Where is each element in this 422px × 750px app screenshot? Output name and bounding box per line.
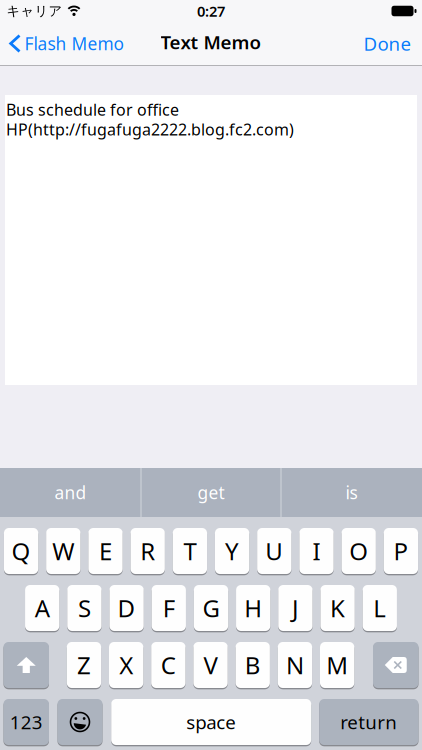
button[interactable]: Z <box>67 642 101 688</box>
staticText: return <box>340 710 397 734</box>
staticText: G <box>202 592 219 624</box>
staticText: K <box>330 592 345 624</box>
staticText: D <box>118 592 136 624</box>
button[interactable]: C <box>151 642 185 688</box>
staticText: Q <box>12 535 31 567</box>
staticText: E <box>99 535 112 567</box>
button[interactable]: H <box>236 585 270 631</box>
button[interactable]: G <box>194 585 228 631</box>
button[interactable]: F <box>152 585 186 631</box>
staticText: space <box>186 710 236 734</box>
button[interactable]: 123 <box>3 699 49 745</box>
staticText: Done <box>363 31 411 56</box>
staticText: X <box>119 649 133 681</box>
button[interactable]: I <box>299 528 334 574</box>
staticText: A <box>35 592 50 624</box>
staticText: 123 <box>10 710 43 734</box>
button[interactable]: B <box>236 642 270 688</box>
staticText: U <box>265 535 283 567</box>
button[interactable] <box>373 642 418 688</box>
staticText: J <box>292 592 299 624</box>
button[interactable]: and <box>0 468 140 517</box>
staticText: Z <box>77 649 91 681</box>
button[interactable]: A <box>25 585 59 631</box>
staticText: F <box>163 592 175 624</box>
button[interactable]: E <box>88 528 123 574</box>
staticText: 0:27 <box>197 1 225 21</box>
staticText: Text Memo <box>160 30 261 54</box>
button[interactable]: Y <box>215 528 249 574</box>
button[interactable]: M <box>320 642 354 688</box>
button[interactable]: S <box>67 585 101 631</box>
staticText: Flash Memo <box>24 32 123 55</box>
button[interactable]: R <box>130 528 165 574</box>
button[interactable]: K <box>320 585 355 631</box>
staticText: W <box>52 535 74 567</box>
button[interactable]: X <box>109 642 143 688</box>
staticText: Bus schedule for office <box>6 99 179 120</box>
staticText: H <box>244 592 262 624</box>
button[interactable]: Q <box>4 528 38 574</box>
button[interactable]: W <box>46 528 80 574</box>
button[interactable]: T <box>173 528 207 574</box>
staticText: and <box>54 481 86 504</box>
staticText: P <box>393 535 408 567</box>
staticText: キャリア <box>6 3 62 19</box>
staticText: N <box>286 649 304 681</box>
staticText: Y <box>225 535 239 567</box>
button[interactable]: Done <box>363 31 422 56</box>
staticText: T <box>183 535 196 567</box>
staticText: get <box>197 481 224 504</box>
button[interactable]: space <box>111 699 311 745</box>
button[interactable]: N <box>278 642 312 688</box>
button[interactable]: V <box>193 642 228 688</box>
button[interactable]: L <box>363 585 397 631</box>
button[interactable]: Flash Memo <box>0 32 123 55</box>
staticText: V <box>203 649 217 681</box>
button[interactable] <box>57 699 102 745</box>
staticText: I <box>312 535 320 567</box>
button[interactable]: return <box>319 699 418 745</box>
button[interactable]: O <box>341 528 376 574</box>
button[interactable]: U <box>257 528 291 574</box>
button[interactable]: get <box>141 468 280 517</box>
button[interactable]: D <box>109 585 144 631</box>
button[interactable]: J <box>278 585 312 631</box>
staticText: L <box>373 592 386 624</box>
staticText: R <box>140 535 155 567</box>
staticText: B <box>245 649 261 681</box>
staticText: M <box>326 649 348 681</box>
button[interactable]: P <box>384 528 418 574</box>
staticText: C <box>161 649 176 681</box>
staticText: S <box>78 592 91 624</box>
button[interactable]: is <box>281 468 421 517</box>
staticText: HP(http://fugafuga2222.blog.fc2.com) <box>6 119 294 140</box>
staticText: O <box>349 535 368 567</box>
button[interactable] <box>3 642 49 688</box>
staticText: is <box>345 481 357 504</box>
